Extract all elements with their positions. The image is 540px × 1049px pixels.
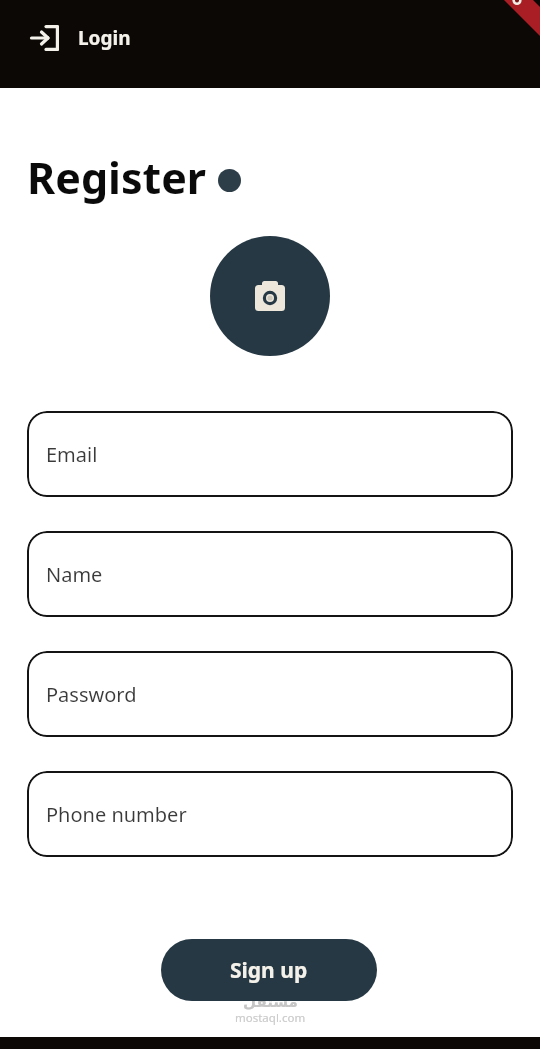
button[interactable]: [210, 236, 330, 356]
button[interactable]: Name: [27, 531, 513, 617]
staticText: Email: [46, 441, 98, 468]
button[interactable]: Login: [31, 25, 131, 51]
staticText: Password: [46, 681, 137, 708]
staticText: Register: [27, 148, 207, 207]
staticText: mostaql.com: [235, 1010, 306, 1026]
staticText: Name: [46, 561, 103, 588]
staticText: Sign up: [230, 956, 308, 985]
button[interactable]: Phone number: [27, 771, 513, 857]
staticText: Phone number: [46, 801, 187, 828]
button[interactable]: Password: [27, 651, 513, 737]
staticText: Login: [78, 25, 131, 51]
button[interactable]: Sign up: [161, 939, 377, 1001]
button[interactable]: Email: [27, 411, 513, 497]
staticText: مستقل: [243, 993, 298, 1010]
